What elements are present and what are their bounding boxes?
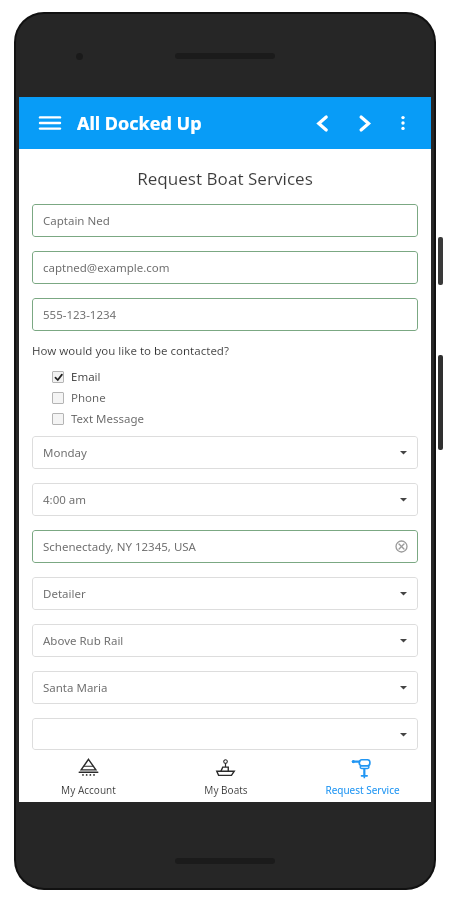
button[interactable]: Above Rub Rail: [32, 624, 418, 657]
button[interactable]: Open navigation menu: [33, 106, 67, 140]
button[interactable]: Detailer: [32, 577, 418, 610]
button[interactable]: captned@example.com: [32, 251, 418, 284]
button[interactable]: Santa Maria: [32, 671, 418, 704]
button[interactable]: Forward: [349, 108, 379, 138]
staticText: 555-123-1234: [43, 307, 117, 323]
button[interactable]: [32, 718, 418, 750]
staticText: Request Boat Services: [32, 167, 418, 190]
staticText: Above Rub Rail: [43, 633, 124, 649]
button[interactable]: 4:00 am: [32, 483, 418, 516]
button[interactable]: Back: [307, 108, 337, 138]
button[interactable]: More options: [389, 109, 417, 137]
button[interactable]: Phone: [32, 387, 418, 408]
staticText: Detailer: [43, 586, 86, 602]
staticText: Phone: [71, 390, 106, 406]
staticText: Email: [71, 369, 101, 385]
button[interactable]: Text Message: [32, 408, 418, 429]
staticText: Santa Maria: [43, 680, 108, 696]
staticText: My Boats: [204, 783, 248, 797]
staticText: All Docked Up: [77, 111, 202, 136]
button[interactable]: Request Service: [294, 750, 431, 802]
button[interactable]: Monday: [32, 436, 418, 469]
staticText: Request Service: [325, 783, 400, 797]
staticText: 4:00 am: [43, 492, 87, 508]
staticText: Captain Ned: [43, 213, 110, 229]
staticText: My Account: [61, 783, 116, 797]
staticText: Monday: [43, 445, 87, 461]
button[interactable]: My Boats: [157, 750, 294, 802]
staticText: Schenectady, NY 12345, USA: [43, 539, 196, 555]
button[interactable]: Schenectady, NY 12345, USA: [32, 530, 418, 563]
button[interactable]: 555-123-1234: [32, 298, 418, 331]
button[interactable]: Email: [32, 366, 418, 387]
button[interactable]: My Account: [19, 750, 157, 802]
staticText: captned@example.com: [43, 260, 170, 276]
staticText: How would you like to be contacted?: [32, 343, 229, 359]
button[interactable]: Captain Ned: [32, 204, 418, 237]
button[interactable]: Clear address: [396, 530, 407, 563]
staticText: Text Message: [71, 411, 145, 427]
